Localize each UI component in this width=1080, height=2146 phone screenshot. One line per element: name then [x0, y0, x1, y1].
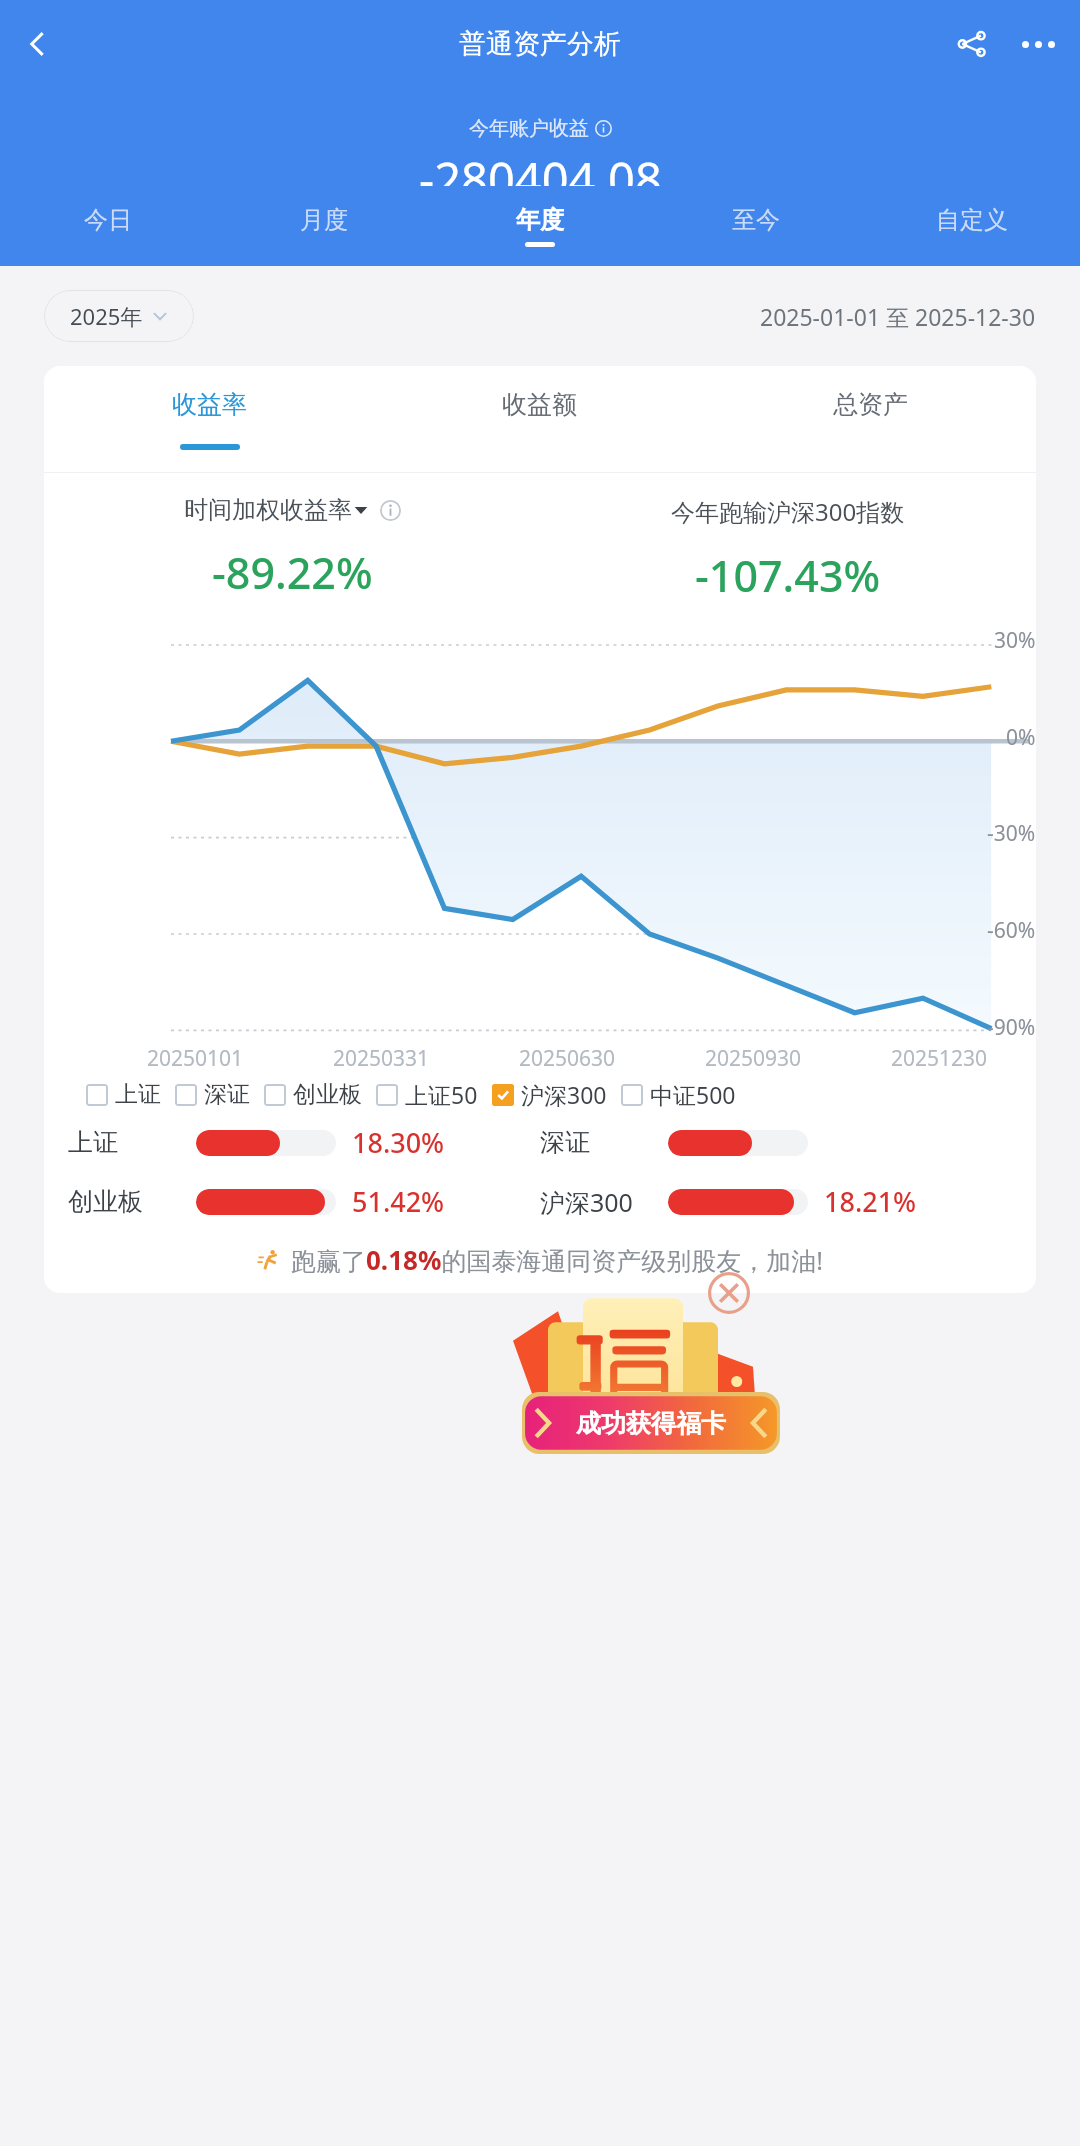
staticText: 时间加权收益率	[184, 495, 352, 525]
staticText: 创业板	[293, 1080, 362, 1109]
staticText: 0%	[1006, 723, 1036, 752]
staticText: 沪深300	[521, 1079, 607, 1110]
staticText: 18.21%	[824, 1183, 917, 1220]
staticText: 深证	[540, 1127, 590, 1158]
staticText: 深证	[204, 1080, 250, 1109]
staticText: 2025年	[70, 301, 143, 331]
staticText: 中证500	[650, 1079, 736, 1110]
staticText: 总资产	[833, 389, 908, 420]
staticText: 成功获得福卡	[576, 1408, 726, 1439]
staticText: 20251230	[891, 1044, 988, 1073]
button[interactable]: Share	[944, 16, 1000, 72]
staticText: 至今	[732, 205, 780, 235]
staticText: 18.30%	[352, 1124, 445, 1161]
staticText: 上证	[115, 1080, 161, 1109]
button[interactable]: More options	[1010, 16, 1066, 72]
button[interactable]: 沪深300	[492, 1079, 621, 1110]
button[interactable]: 总资产	[705, 366, 1036, 472]
staticText: -89.22%	[212, 543, 373, 602]
button[interactable]: 收益率	[44, 366, 374, 472]
staticText: 沪深300	[540, 1185, 633, 1219]
staticText: 收益额	[502, 389, 577, 420]
staticText: -107.43%	[695, 546, 881, 605]
button[interactable]: 成功获得福卡	[522, 1392, 780, 1454]
staticText: -30%	[987, 819, 1036, 848]
staticText: 20250331	[333, 1044, 430, 1073]
button[interactable]: 时间加权收益率	[184, 495, 401, 525]
button[interactable]: 至今	[648, 186, 864, 266]
button[interactable]: 上证50	[376, 1079, 492, 1110]
button[interactable]: 今年账户收益	[469, 116, 612, 141]
staticText: 上证50	[405, 1079, 478, 1110]
staticText: 跑赢了0.18%的国泰海通同资产级别股友，加油!	[291, 1242, 824, 1277]
staticText: 今日	[84, 205, 132, 235]
staticText: 上证	[68, 1127, 118, 1158]
staticText: 20250930	[705, 1044, 802, 1073]
button[interactable]: 自定义	[864, 186, 1080, 266]
staticText: 月度	[300, 205, 348, 235]
button[interactable]: 2025年	[44, 290, 194, 342]
staticText: -280404.08	[419, 147, 662, 186]
staticText: 20250630	[519, 1044, 616, 1073]
staticText: 自定义	[936, 205, 1008, 235]
button[interactable]: 上证	[68, 1124, 540, 1161]
button[interactable]: 深证	[175, 1080, 264, 1109]
staticText: 普通资产分析	[459, 27, 621, 61]
button[interactable]: 月度	[216, 186, 432, 266]
button[interactable]: 年度	[432, 186, 648, 266]
button[interactable]: 中证500	[621, 1079, 750, 1110]
staticText: 创业板	[68, 1186, 143, 1217]
button[interactable]: 深证	[540, 1124, 1012, 1161]
staticText: 年度	[516, 205, 564, 235]
staticText: 今年账户收益	[469, 116, 589, 141]
button[interactable]: 沪深300	[540, 1183, 1012, 1220]
staticText: -60%	[987, 916, 1036, 945]
button[interactable]	[508, 1289, 758, 1474]
button[interactable]: 今日	[0, 186, 216, 266]
button[interactable]: Back	[10, 16, 66, 72]
staticText: 2025-01-01 至 2025-12-30	[760, 301, 1036, 332]
staticText: 51.42%	[352, 1183, 445, 1220]
button[interactable]: 创业板	[264, 1080, 376, 1109]
staticText: 今年跑输沪深300指数	[671, 495, 905, 528]
staticText: 30%	[994, 626, 1036, 655]
button[interactable]: 上证	[86, 1080, 175, 1109]
button[interactable]: Close ad	[706, 1270, 752, 1316]
staticText: -90%	[987, 1013, 1036, 1042]
staticText: 20250101	[147, 1044, 244, 1073]
staticText: 收益率	[172, 389, 247, 420]
button[interactable]: 创业板	[68, 1183, 540, 1220]
button[interactable]: 收益额	[374, 366, 705, 472]
